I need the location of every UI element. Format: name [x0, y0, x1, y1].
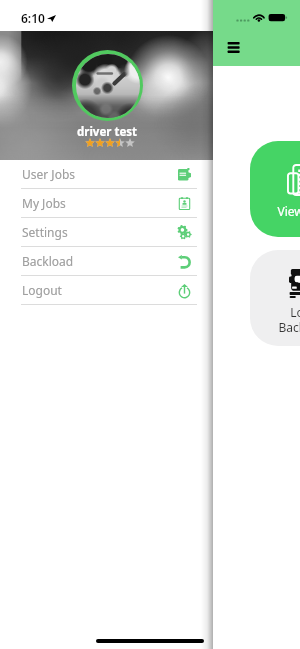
- staticText: Logout: [22, 282, 62, 298]
- button[interactable]: User Jobs: [0, 160, 213, 189]
- staticText: User Jobs: [22, 166, 76, 182]
- staticText: My Jobs: [22, 195, 66, 211]
- staticText: Load Backload: [278, 304, 300, 335]
- button[interactable]: Open navigation menu: [219, 33, 247, 61]
- button[interactable]: View Jobs: [250, 141, 300, 237]
- button[interactable]: Load Backload: [250, 250, 300, 346]
- staticText: Backload: [22, 253, 74, 269]
- staticText: 6:10: [21, 10, 45, 26]
- button[interactable]: Settings: [0, 218, 213, 247]
- staticText: driver test: [77, 124, 138, 140]
- button[interactable]: Backload: [0, 247, 213, 276]
- staticText: Settings: [22, 224, 68, 240]
- button[interactable]: My Jobs: [0, 189, 213, 218]
- staticText: View Jobs: [277, 203, 300, 219]
- button[interactable]: Logout: [0, 276, 213, 305]
